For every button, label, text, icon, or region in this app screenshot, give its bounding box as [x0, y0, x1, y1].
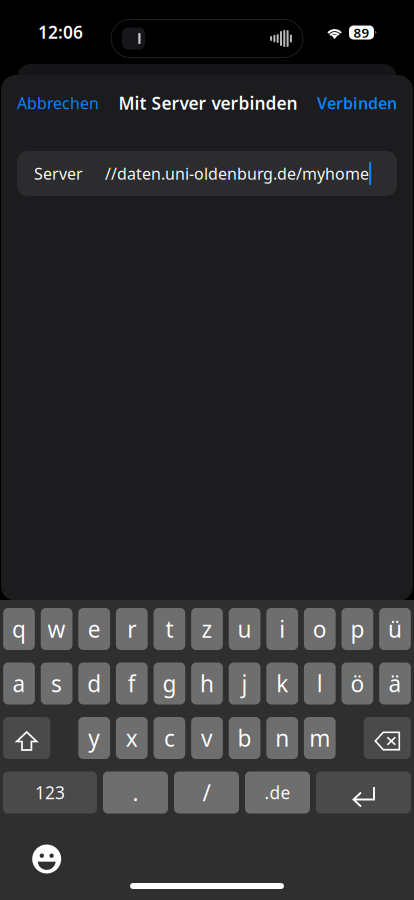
button[interactable]: Shift — [3, 717, 50, 759]
staticText: j — [242, 668, 248, 698]
button[interactable]: p — [342, 608, 373, 650]
button[interactable]: .de — [245, 771, 310, 813]
button[interactable]: u — [229, 608, 260, 650]
staticText: Server — [34, 163, 83, 184]
staticText: u — [238, 614, 252, 644]
button[interactable]: e — [78, 608, 110, 650]
staticText: ä — [388, 668, 401, 698]
button[interactable]: k — [266, 662, 298, 704]
button[interactable]: d — [78, 662, 110, 704]
staticText: 89 — [353, 24, 369, 41]
button[interactable]: ö — [342, 662, 373, 704]
staticText: p — [350, 614, 364, 644]
staticText: m — [309, 723, 330, 753]
staticText: y — [88, 723, 100, 753]
staticText: / — [202, 777, 210, 807]
button[interactable]: i — [266, 608, 298, 650]
button[interactable]: w — [41, 608, 72, 650]
button[interactable]: s — [41, 662, 72, 704]
button[interactable]: a — [3, 662, 35, 704]
staticText: l — [317, 668, 323, 698]
button[interactable]: t — [154, 608, 185, 650]
staticText: b — [238, 723, 252, 753]
button[interactable]: b — [229, 717, 260, 759]
staticText: k — [276, 668, 288, 698]
staticText: e — [88, 614, 101, 644]
button[interactable]: o — [304, 608, 336, 650]
button[interactable]: x — [116, 717, 148, 759]
button[interactable]: / — [174, 771, 239, 813]
staticText: g — [162, 668, 176, 698]
staticText: o — [313, 614, 327, 644]
button[interactable]: v — [191, 717, 223, 759]
staticText: c — [164, 723, 175, 753]
staticText: z — [201, 614, 212, 644]
staticText: ö — [350, 668, 364, 698]
staticText: i — [279, 614, 285, 644]
button[interactable]: ü — [379, 608, 411, 650]
staticText: f — [128, 668, 136, 698]
button[interactable]: q — [3, 608, 35, 650]
button[interactable]: y — [78, 717, 110, 759]
button[interactable]: Abbrechen — [17, 92, 99, 114]
staticText: Mit Server verbinden — [118, 91, 297, 114]
staticText: Abbrechen — [17, 92, 99, 114]
button[interactable]: h — [191, 662, 223, 704]
button[interactable]: c — [154, 717, 185, 759]
button[interactable]: n — [266, 717, 298, 759]
button[interactable]: ä — [379, 662, 411, 704]
staticText: s — [51, 668, 62, 698]
staticText: h — [200, 668, 214, 698]
staticText: . — [132, 777, 138, 807]
button[interactable]: f — [116, 662, 148, 704]
button[interactable]: j — [229, 662, 260, 704]
staticText: //daten.uni-oldenburg.de/myhome — [105, 163, 369, 184]
button[interactable]: Verbinden — [317, 92, 397, 114]
button[interactable]: . — [103, 771, 168, 813]
staticText: a — [12, 668, 25, 698]
staticText: r — [127, 614, 136, 644]
button[interactable]: Delete — [364, 717, 411, 759]
staticText: x — [126, 723, 138, 753]
staticText: .de — [264, 781, 290, 804]
button[interactable]: g — [154, 662, 185, 704]
button[interactable]: Return — [316, 771, 411, 813]
staticText: Verbinden — [317, 92, 397, 114]
button[interactable]: z — [191, 608, 223, 650]
button[interactable]: Emoji keyboard — [32, 844, 61, 873]
staticText: v — [201, 723, 213, 753]
staticText: t — [165, 614, 173, 644]
staticText: d — [87, 668, 101, 698]
button[interactable]: r — [116, 608, 148, 650]
button[interactable]: 123 — [3, 771, 97, 813]
staticText: 12:06 — [38, 20, 83, 43]
staticText: ü — [388, 614, 402, 644]
staticText: q — [12, 614, 26, 644]
button[interactable]: m — [304, 717, 336, 759]
button[interactable]: l — [304, 662, 336, 704]
staticText: w — [48, 614, 66, 644]
staticText: 123 — [35, 781, 65, 804]
staticText: n — [275, 723, 289, 753]
